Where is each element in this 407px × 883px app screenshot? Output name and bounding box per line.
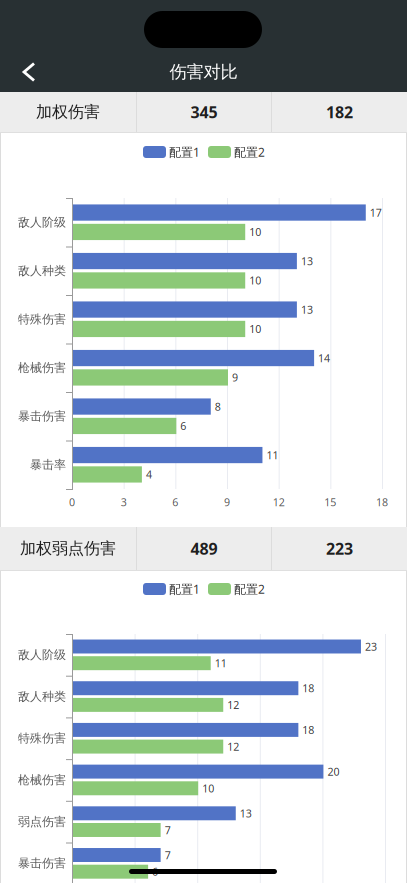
- staticText: 10: [249, 322, 261, 336]
- staticText: 18: [302, 681, 314, 695]
- staticText: 13: [301, 302, 313, 317]
- staticText: 11: [266, 448, 278, 462]
- staticText: 6: [180, 419, 186, 433]
- staticText: 11: [215, 656, 227, 670]
- staticText: 18: [376, 495, 388, 509]
- staticText: 暴击伤害: [18, 409, 66, 424]
- staticText: 0: [69, 495, 75, 509]
- staticText: 配置1: [169, 144, 200, 160]
- staticText: 敌人种类: [18, 263, 66, 278]
- staticText: 6: [152, 865, 158, 879]
- staticText: 枪械伤害: [18, 773, 66, 787]
- staticText: 暴击率: [30, 457, 66, 472]
- staticText: 敌人阶级: [18, 647, 66, 662]
- staticText: 12: [273, 495, 285, 509]
- staticText: 伤害对比: [169, 61, 237, 83]
- staticText: 特殊伤害: [18, 312, 66, 327]
- staticText: 弱点伤害: [18, 814, 66, 829]
- staticText: 23: [365, 639, 377, 654]
- staticText: 加权弱点伤害: [20, 539, 116, 558]
- staticText: 13: [301, 254, 313, 268]
- staticText: 345: [190, 101, 217, 123]
- staticText: 9: [224, 495, 230, 509]
- staticText: 枪械伤害: [18, 360, 66, 375]
- staticText: 182: [326, 101, 353, 123]
- staticText: 10: [249, 225, 261, 239]
- staticText: 13: [240, 806, 252, 820]
- staticText: 14: [318, 351, 330, 365]
- staticText: 223: [326, 538, 353, 559]
- staticText: 15: [324, 495, 336, 509]
- staticText: 8: [215, 399, 221, 414]
- staticText: 暴击伤害: [18, 856, 66, 871]
- staticText: 加权伤害: [36, 102, 100, 122]
- staticText: 4: [146, 467, 152, 482]
- staticText: 6: [172, 495, 178, 509]
- staticText: 3: [121, 495, 127, 509]
- staticText: 17: [370, 205, 382, 220]
- staticText: 20: [327, 764, 339, 779]
- staticText: 9: [232, 370, 238, 385]
- staticText: 10: [249, 273, 261, 288]
- button[interactable]: Back: [6, 50, 52, 94]
- staticText: 配置2: [234, 581, 265, 597]
- staticText: 配置2: [234, 144, 265, 160]
- staticText: 敌人阶级: [18, 215, 66, 230]
- staticText: 敌人种类: [18, 689, 66, 704]
- staticText: 12: [227, 698, 239, 712]
- staticText: 10: [202, 781, 214, 795]
- staticText: 489: [190, 538, 217, 559]
- staticText: 18: [302, 723, 314, 737]
- staticText: 12: [227, 739, 239, 754]
- staticText: 特殊伤害: [18, 731, 66, 746]
- staticText: 7: [165, 848, 171, 862]
- staticText: 配置1: [169, 581, 200, 597]
- staticText: 7: [165, 823, 171, 837]
